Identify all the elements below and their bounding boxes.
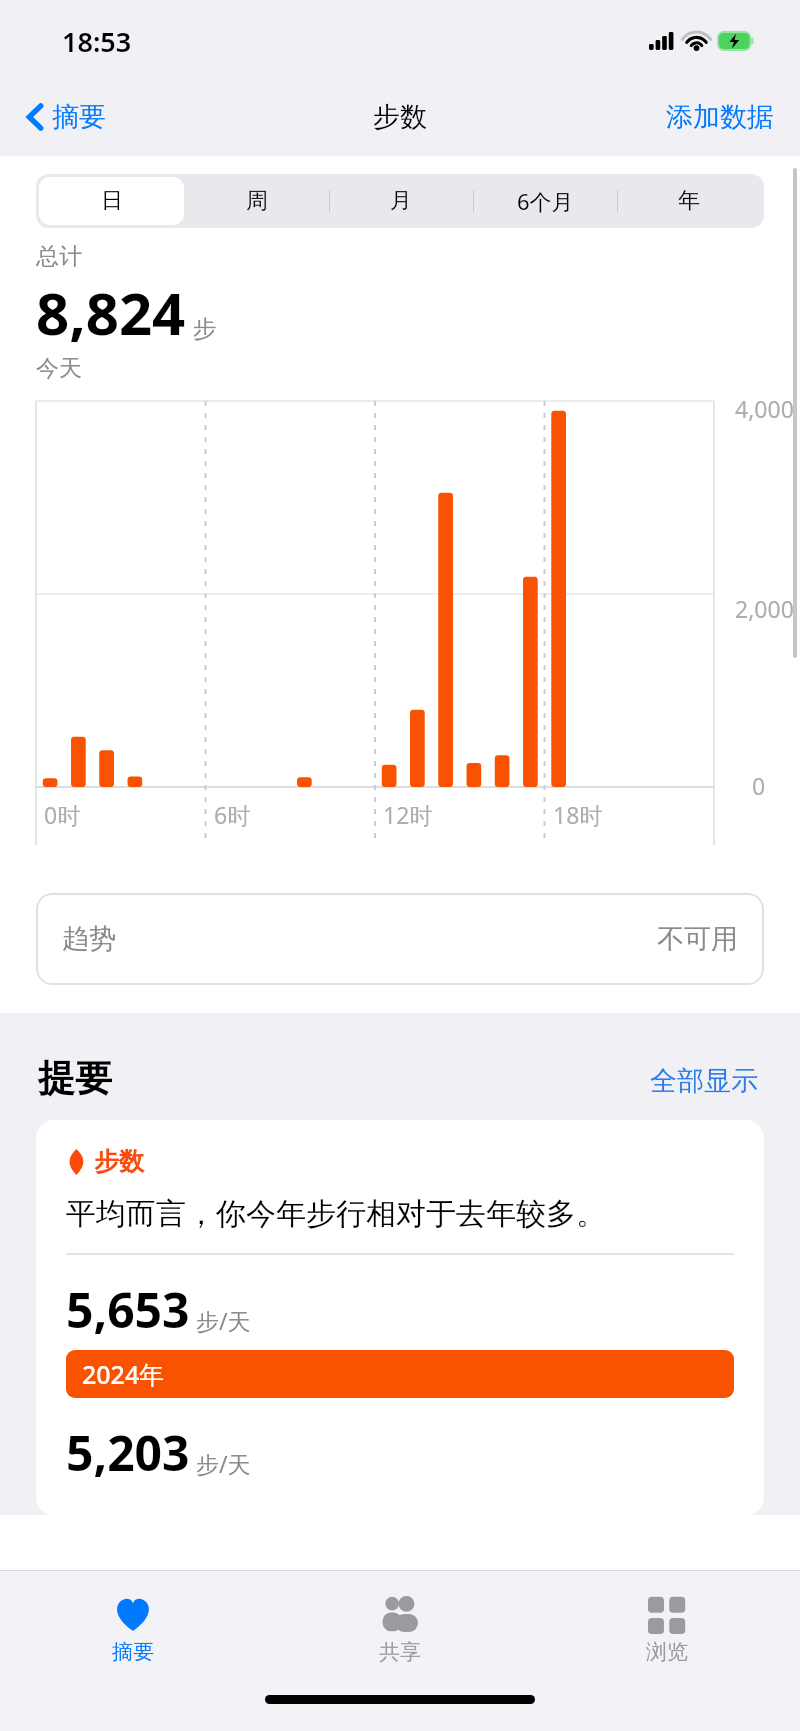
staticText: 年 <box>678 187 700 215</box>
button[interactable]: 年 <box>617 177 761 225</box>
staticText: 平均而言，你今年步行相对于去年较多。 <box>66 1195 606 1233</box>
staticText: 周 <box>246 187 268 215</box>
staticText: 0时 <box>44 799 81 830</box>
staticText: 6时 <box>214 799 251 830</box>
staticText: 步 <box>193 314 217 344</box>
staticText: 步数 <box>94 1146 144 1177</box>
staticText: 全部显示 <box>650 1064 758 1098</box>
staticText: 摘要 <box>112 1639 154 1665</box>
staticText: 总计 <box>36 242 82 271</box>
button[interactable]: 摘要 <box>20 94 112 140</box>
button[interactable]: 摘要 <box>0 1571 266 1689</box>
staticText: 浏览 <box>646 1639 688 1665</box>
button[interactable]: 周 <box>184 177 329 225</box>
staticText: 共享 <box>379 1639 421 1665</box>
staticText: 5,653 <box>66 1277 190 1342</box>
button[interactable]: 月 <box>329 177 473 225</box>
staticText: 2,000 <box>735 593 794 624</box>
button[interactable]: 6个月 <box>473 177 617 225</box>
staticText: 6个月 <box>517 186 574 216</box>
staticText: 提要 <box>38 1055 112 1102</box>
staticText: 步数 <box>373 100 427 134</box>
staticText: 月 <box>390 187 412 215</box>
staticText: 8,824 <box>36 273 186 352</box>
staticText: 18时 <box>553 799 603 830</box>
staticText: 步/天 <box>196 1448 251 1479</box>
staticText: 2024年 <box>82 1357 165 1391</box>
staticText: 添加数据 <box>666 100 774 134</box>
staticText: 日 <box>101 187 123 215</box>
staticText: 5,203 <box>66 1420 190 1485</box>
staticText: 摘要 <box>52 100 106 134</box>
staticText: 不可用 <box>657 922 738 956</box>
staticText: 今天 <box>36 354 82 383</box>
staticText: 步/天 <box>196 1305 251 1336</box>
button[interactable]: 日 <box>39 177 184 225</box>
button[interactable]: 浏览 <box>533 1571 800 1689</box>
staticText: 趋势 <box>62 922 116 956</box>
other: Steps <box>66 1149 86 1175</box>
staticText: 0 <box>752 770 766 801</box>
staticText: 4,000 <box>735 393 794 424</box>
button[interactable]: 趋势 <box>36 893 764 985</box>
staticText: 18:53 <box>62 23 132 60</box>
staticText: 12时 <box>383 799 433 830</box>
button[interactable]: 添加数据 <box>660 94 780 140</box>
button[interactable]: Steps <box>36 1120 764 1515</box>
button[interactable]: 全部显示 <box>646 1060 762 1102</box>
button[interactable]: 共享 <box>266 1571 533 1689</box>
